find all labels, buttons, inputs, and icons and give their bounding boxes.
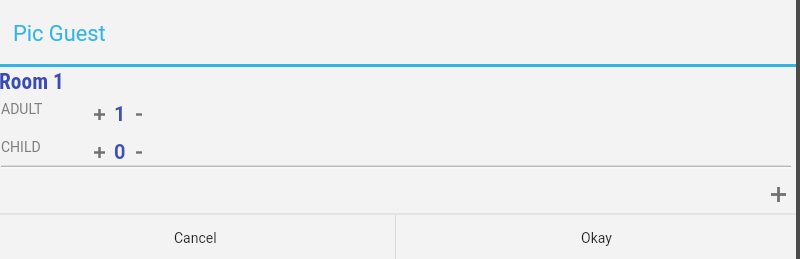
staticText: ADULT — [1, 101, 43, 117]
button[interactable]: Decrease CHILD — [122, 135, 156, 169]
staticText: 0 — [114, 140, 126, 163]
button[interactable]: Increase ADULT — [82, 97, 116, 131]
button[interactable]: Add room — [758, 174, 798, 214]
button[interactable]: Decrease ADULT — [122, 97, 156, 131]
staticText: 1 — [114, 102, 126, 125]
button[interactable]: Increase CHILD — [82, 135, 116, 169]
staticText: Room 1 — [0, 69, 64, 94]
staticText: Okay — [581, 230, 612, 246]
staticText: Pic Guest — [13, 21, 106, 47]
button[interactable]: Okay — [396, 215, 796, 259]
staticText: Cancel — [174, 230, 217, 246]
staticText: CHILD — [1, 139, 41, 155]
button[interactable]: Cancel — [0, 215, 395, 259]
